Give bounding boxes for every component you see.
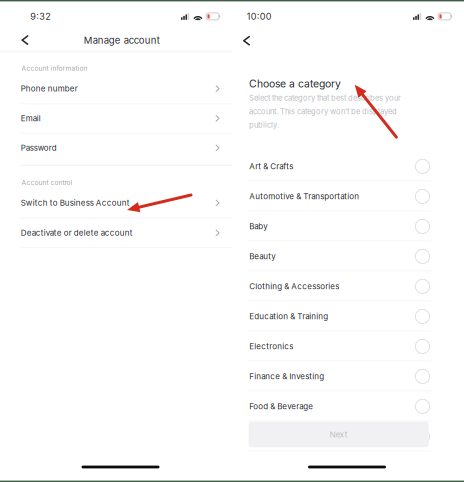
staticText: Phone number [21, 84, 78, 93]
button[interactable]: Food & Beverage [232, 0, 464, 482]
staticText: Account control [22, 179, 73, 187]
staticText: Account information [22, 64, 88, 72]
staticText: Automotive & Transportation [249, 192, 359, 201]
staticText: Food & Beverage [249, 402, 313, 411]
staticText: publicly. [249, 120, 279, 130]
button[interactable]: Beauty [232, 0, 464, 482]
button[interactable]: Email [0, 0, 232, 482]
button[interactable]: Password [0, 0, 232, 482]
staticText: Password [21, 143, 57, 153]
staticText: 9:32 [30, 11, 51, 22]
button[interactable]: Health & Wellness [232, 0, 464, 482]
staticText: Email [21, 114, 41, 123]
staticText: Baby [249, 222, 267, 231]
staticText: Finance & Investing [249, 372, 324, 381]
button[interactable]: Electronics [232, 0, 464, 482]
button[interactable]: Switch to Business Account [0, 0, 232, 482]
staticText: Beauty [249, 252, 275, 261]
button[interactable]: Back [0, 0, 232, 482]
staticText: Clothing & Accessories [249, 282, 339, 291]
button[interactable]: Finance & Investing [232, 0, 464, 482]
staticText: Switch to Business Account [21, 198, 130, 208]
staticText: 10:00 [247, 11, 272, 22]
staticText: Education & Training [249, 312, 328, 321]
button[interactable]: Baby [232, 0, 464, 482]
button[interactable]: Next [232, 0, 464, 482]
staticText: Manage account [84, 34, 160, 46]
button[interactable]: Deactivate or delete account [0, 0, 232, 482]
button[interactable]: Phone number [0, 0, 232, 482]
staticText: Select the category that best describes … [249, 93, 401, 103]
staticText: account. This category won't be displaye… [249, 107, 397, 116]
staticText: Next [330, 430, 348, 439]
staticText: Art & Crafts [249, 162, 293, 171]
button[interactable]: Art & Crafts [232, 0, 464, 482]
button[interactable]: Education & Training [232, 0, 464, 482]
staticText: Deactivate or delete account [21, 228, 133, 238]
button[interactable]: Back [232, 0, 464, 482]
button[interactable]: Automotive & Transportation [232, 0, 464, 482]
button[interactable]: Clothing & Accessories [232, 0, 464, 482]
staticText: Choose a category [249, 77, 341, 90]
staticText: Electronics [249, 342, 293, 351]
